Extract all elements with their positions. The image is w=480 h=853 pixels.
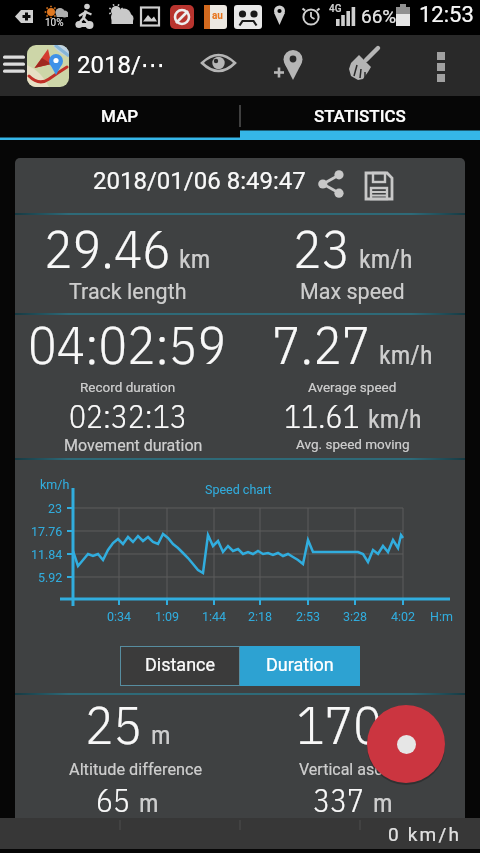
staticText: MAP — [101, 106, 139, 126]
staticText: Track length — [69, 279, 187, 304]
staticText: 5.92 — [38, 570, 63, 585]
staticText: 3:28 — [343, 609, 368, 624]
staticText: m — [390, 720, 410, 750]
staticText: 2018/⋯ — [77, 51, 165, 79]
staticText: STATISTICS — [314, 106, 406, 126]
staticText: Avg. speed moving — [296, 436, 410, 452]
staticText: 29.46 — [44, 214, 171, 283]
button[interactable] — [270, 47, 310, 85]
staticText: 4:02 — [391, 609, 416, 624]
staticText: 2:53 — [296, 609, 321, 624]
staticText: m — [139, 788, 159, 818]
staticText: Altitude difference — [69, 760, 203, 779]
button[interactable]: Distance — [121, 647, 239, 685]
button[interactable] — [428, 47, 456, 89]
button[interactable] — [196, 46, 241, 82]
button[interactable] — [316, 169, 346, 199]
staticText: 25 — [85, 690, 143, 759]
staticText: 1:44 — [202, 609, 227, 624]
staticText: 2:18 — [248, 609, 273, 624]
staticText: 7.27 — [272, 310, 371, 379]
button[interactable] — [367, 705, 445, 783]
button[interactable]: STATISTICS — [240, 96, 480, 140]
staticText: au — [212, 10, 223, 22]
button[interactable]: MAP — [0, 96, 240, 140]
staticText: 1:09 — [155, 609, 180, 624]
staticText: 12:53 — [419, 2, 474, 28]
staticText: 66% — [361, 5, 397, 27]
staticText: Duration — [266, 654, 334, 675]
staticText: m — [151, 720, 171, 750]
staticText: 11.61 — [284, 396, 360, 437]
button[interactable] — [362, 169, 396, 203]
staticText: 17.76 — [31, 524, 63, 539]
staticText: 4G — [329, 3, 342, 15]
staticText: H:m — [430, 609, 453, 624]
staticText: Max speed — [300, 279, 405, 304]
button[interactable] — [0, 35, 30, 96]
staticText: 0:34 — [107, 609, 132, 624]
staticText: 337 — [313, 780, 365, 818]
staticText: 65 — [96, 780, 131, 818]
staticText: Record duration — [80, 379, 176, 395]
staticText: 02:32:13 — [69, 396, 187, 437]
staticText: 23 — [293, 214, 351, 283]
staticText: km/h — [368, 404, 422, 434]
staticText: 11.84 — [31, 547, 63, 562]
staticText: km/h — [40, 477, 70, 492]
staticText: Average speed — [308, 379, 397, 395]
staticText: Speed chart — [205, 482, 272, 497]
staticText: Distance — [145, 654, 216, 675]
staticText: Vertical ascent — [299, 760, 406, 779]
staticText: km/h — [359, 244, 413, 274]
button[interactable]: Duration — [240, 646, 360, 686]
staticText: 2018/01/06 8:49:47 — [93, 167, 306, 195]
staticText: 23 — [48, 501, 63, 516]
staticText: km/h — [379, 340, 433, 370]
staticText: 170 — [296, 690, 382, 759]
staticText: 10% — [45, 17, 64, 29]
staticText: m — [373, 788, 393, 818]
staticText: 04:02:59 — [28, 310, 227, 379]
staticText: km — [179, 244, 211, 274]
button[interactable] — [346, 45, 390, 85]
staticText: Movement duration — [64, 436, 203, 455]
staticText: 0 km/h — [388, 823, 462, 845]
